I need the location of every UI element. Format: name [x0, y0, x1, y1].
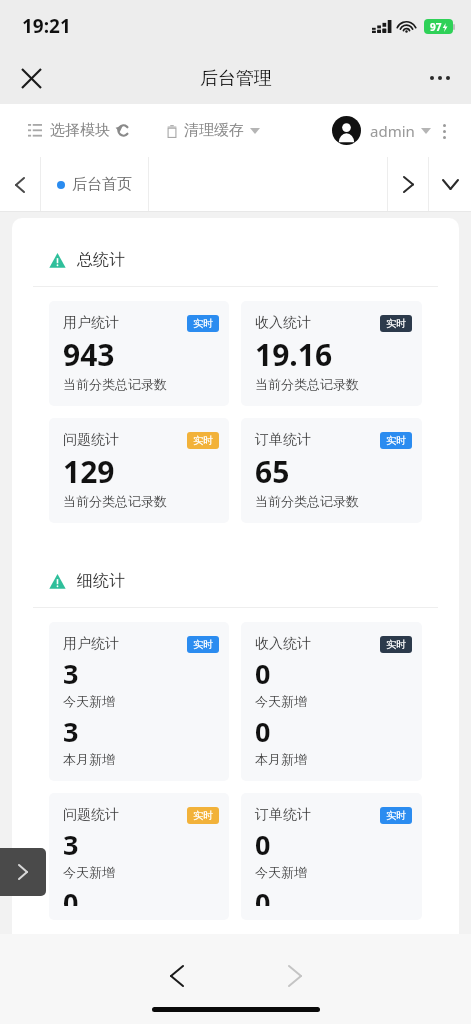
staticText: 943 — [63, 334, 115, 375]
staticText: 今天新增 — [63, 693, 115, 709]
staticText: 清理缓存 — [184, 121, 244, 140]
staticText: 选择模块 — [50, 121, 110, 140]
staticText: 收入统计 — [255, 635, 311, 653]
staticText: 问题统计 — [63, 431, 119, 449]
button[interactable]: Forward — [273, 954, 317, 998]
staticText: 今天新增 — [255, 693, 307, 709]
button[interactable]: 订单统计 — [241, 793, 422, 920]
staticText: 0 — [63, 884, 79, 906]
staticText: 0 — [255, 655, 271, 692]
staticText: 今天新增 — [255, 864, 307, 880]
button[interactable]: admin — [332, 116, 431, 145]
staticText: 问题统计 — [63, 806, 119, 824]
staticText: 实时 — [386, 317, 406, 330]
button[interactable]: Open side drawer — [0, 848, 46, 896]
button[interactable]: Menu — [431, 118, 457, 144]
staticText: 0 — [255, 826, 271, 863]
staticText: 3 — [63, 713, 79, 750]
staticText: 订单统计 — [255, 431, 311, 449]
staticText: 实时 — [193, 809, 213, 822]
button[interactable]: 问题统计 — [49, 793, 229, 920]
staticText: 实时 — [386, 434, 406, 447]
button[interactable]: Scroll tabs right — [388, 157, 428, 212]
staticText: 19.16 — [255, 334, 333, 375]
staticText: 用户统计 — [63, 314, 119, 332]
staticText: 当前分类总记录数 — [255, 376, 359, 392]
button[interactable]: Show all tabs — [429, 157, 471, 212]
staticText: 19:21 — [22, 13, 71, 39]
staticText: 3 — [63, 655, 79, 692]
staticText: 当前分类总记录数 — [63, 376, 167, 392]
staticText: 后台首页 — [72, 175, 132, 194]
staticText: 今天新增 — [63, 864, 115, 880]
staticText: 97 — [430, 20, 442, 34]
button[interactable]: Back — [155, 954, 199, 998]
staticText: 65 — [255, 451, 290, 492]
staticText: 0 — [255, 884, 271, 906]
staticText: 细统计 — [77, 571, 125, 591]
staticText: 0 — [255, 713, 271, 750]
staticText: 本月新增 — [255, 751, 307, 767]
button[interactable]: 收入统计 — [241, 622, 422, 781]
button[interactable]: More options — [419, 57, 461, 99]
staticText: 实时 — [386, 638, 406, 651]
button[interactable]: 收入统计 — [241, 301, 422, 406]
staticText: 当前分类总记录数 — [63, 493, 167, 509]
staticText: 总统计 — [77, 250, 125, 270]
staticText: 订单统计 — [255, 806, 311, 824]
staticText: 实时 — [386, 809, 406, 822]
staticText: 实时 — [193, 638, 213, 651]
button[interactable]: 问题统计 — [49, 418, 229, 523]
staticText: 收入统计 — [255, 314, 311, 332]
button[interactable]: 用户统计 — [49, 622, 229, 781]
staticText: 实时 — [193, 434, 213, 447]
staticText: 本月新增 — [63, 751, 115, 767]
button[interactable]: 选择模块 — [28, 121, 131, 140]
staticText: admin — [370, 121, 415, 141]
staticText: 3 — [63, 826, 79, 863]
button[interactable]: 用户统计 — [49, 301, 229, 406]
button[interactable]: Close — [10, 57, 52, 99]
staticText: 实时 — [193, 317, 213, 330]
staticText: 后台管理 — [200, 67, 272, 90]
button[interactable]: Scroll tabs left — [0, 157, 40, 212]
staticText: 当前分类总记录数 — [255, 493, 359, 509]
staticText: 用户统计 — [63, 635, 119, 653]
button[interactable]: 订单统计 — [241, 418, 422, 523]
staticText: 129 — [63, 451, 115, 492]
button[interactable]: 后台首页 — [41, 157, 148, 212]
button[interactable]: 清理缓存 — [165, 121, 260, 140]
